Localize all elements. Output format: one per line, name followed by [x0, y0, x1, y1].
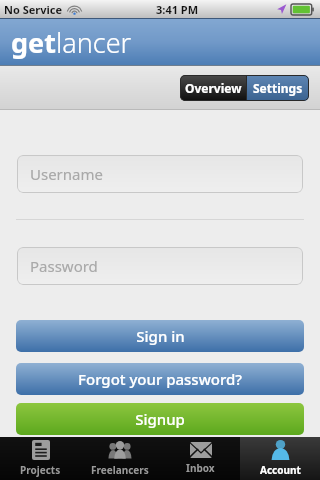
button[interactable]: Forgot your password?: [16, 363, 304, 395]
button[interactable]: Password: [17, 247, 303, 285]
button[interactable]: Freelancers: [80, 437, 160, 480]
staticText: Password: [30, 256, 98, 276]
button[interactable]: Signup: [16, 403, 304, 435]
staticText: lancer: [56, 24, 132, 61]
staticText: Projects: [20, 463, 61, 477]
button[interactable]: Inbox: [160, 437, 240, 480]
staticText: Forgot your password?: [78, 369, 242, 389]
staticText: Sign in: [136, 326, 185, 346]
staticText: Inbox: [186, 461, 215, 475]
button[interactable]: Settings: [247, 75, 309, 101]
staticText: Username: [30, 164, 103, 184]
button[interactable]: Username: [17, 155, 303, 193]
button[interactable]: Overview: [180, 75, 246, 101]
staticText: 3:41 PM: [156, 2, 199, 17]
staticText: No Service: [4, 2, 63, 17]
staticText: Overview: [185, 80, 242, 96]
staticText: Signup: [135, 409, 185, 429]
staticText: Freelancers: [91, 463, 149, 477]
staticText: Account: [260, 463, 301, 477]
staticText: Settings: [253, 80, 303, 96]
button[interactable]: Sign in: [16, 320, 304, 352]
staticText: get: [11, 24, 56, 61]
button[interactable]: Projects: [0, 437, 80, 480]
button[interactable]: Account: [240, 437, 320, 480]
